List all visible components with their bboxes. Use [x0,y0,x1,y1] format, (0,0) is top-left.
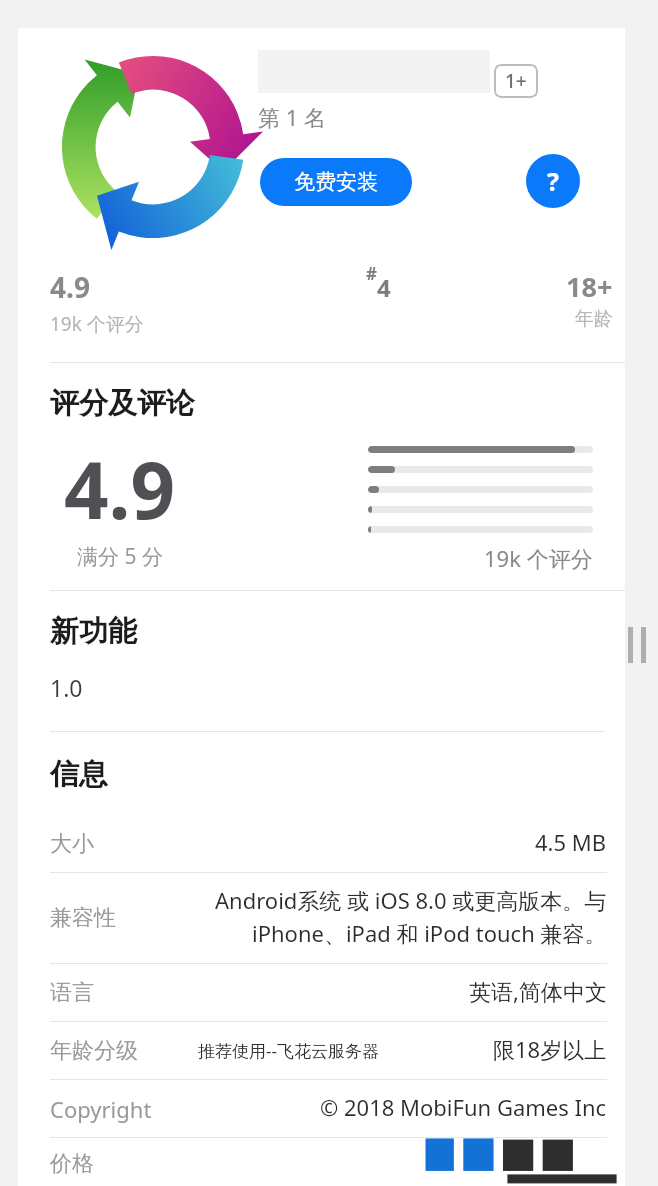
button[interactable]: 大小 [18,815,625,873]
staticText: 年龄 [575,307,613,331]
staticText: 1.0 [50,672,83,703]
staticText: 19k 个评分 [50,311,144,337]
staticText: 4.9 [50,268,90,306]
staticText: 18+ [566,268,613,305]
staticText: 满分 5 分 [77,542,163,571]
button[interactable]: 免费安装 [260,158,412,206]
staticText: 4.9 [64,436,176,542]
staticText: 免费安装 [294,169,378,195]
staticText: 语言 [50,979,94,1007]
button[interactable]: Copyright [18,1080,625,1138]
button[interactable]: 语言 [18,964,625,1022]
staticText: 评分及评论 [50,385,195,422]
staticText: 大小 [50,830,94,858]
staticText: Android系统 或 iOS 8.0 或更高版本。与 [215,885,607,915]
staticText: 英语,简体中文 [469,976,607,1006]
staticText: 信息 [50,756,108,793]
staticText: Copyright [50,1094,152,1124]
button[interactable]: 价格 [18,1138,625,1186]
staticText: 第 1 名 [258,102,327,132]
button[interactable]: 年龄分级 [18,1022,625,1080]
staticText: ? [547,164,559,198]
button[interactable]: 1+ [494,64,538,98]
staticText: 4 [377,271,391,304]
staticText: iPhone、iPad 和 iPod touch 兼容。 [252,918,607,948]
staticText: 推荐使用--飞花云服务器 [198,1039,379,1062]
staticText: 1+ [505,68,527,94]
button[interactable]: Help [526,154,580,208]
staticText: © 2018 MobiFun Games Inc [320,1092,607,1122]
staticText: 价格 [50,1150,94,1174]
staticText: 年龄分级 [50,1037,138,1065]
staticText: 限18岁以上 [493,1034,607,1064]
staticText: # [366,262,377,285]
staticText: 新功能 [50,613,137,650]
button[interactable]: 兼容性 [18,873,625,964]
staticText: 兼容性 [50,904,116,932]
staticText: 19k 个评分 [484,543,593,573]
button[interactable]: Resize handle [624,623,650,667]
staticText: 4.5 MB [535,827,607,857]
